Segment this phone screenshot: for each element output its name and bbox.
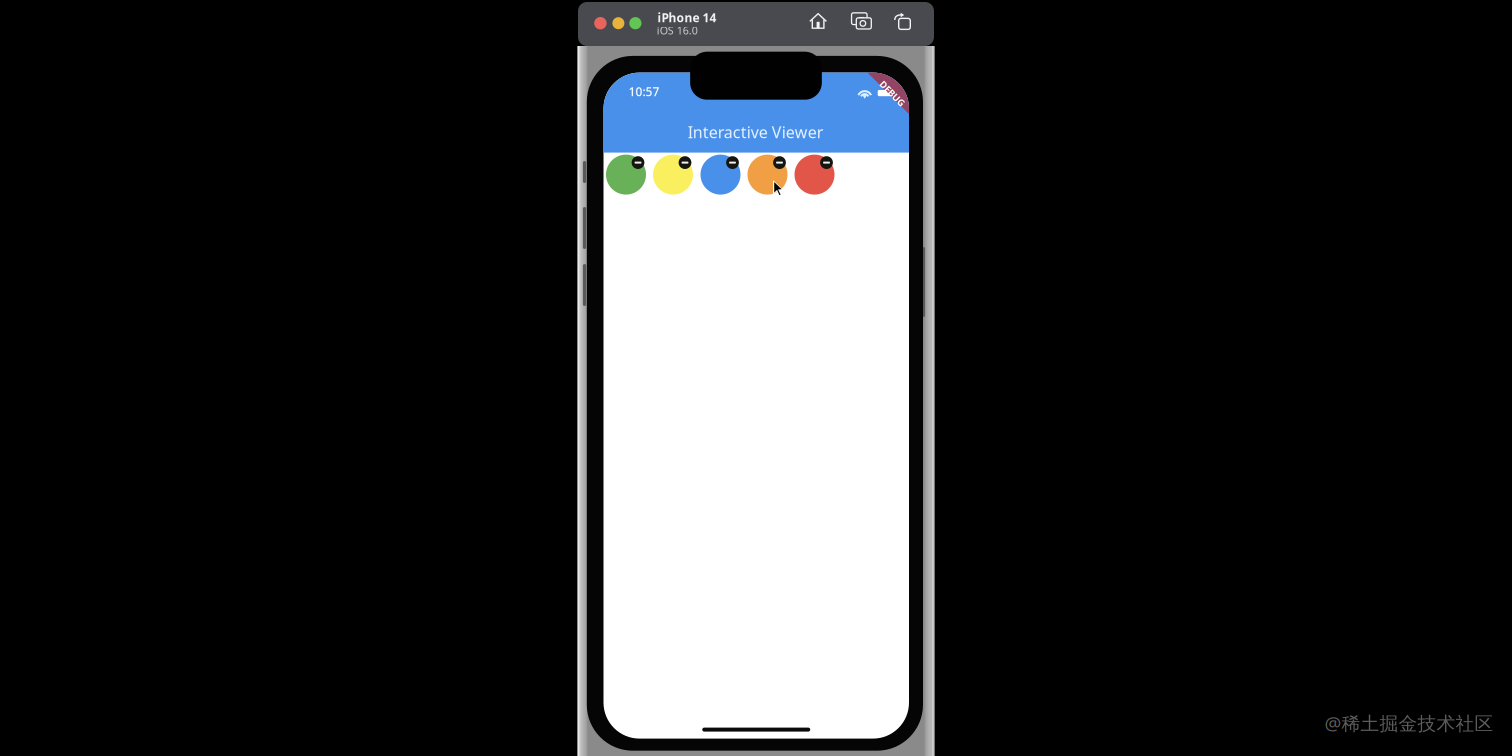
staticText: iPhone 14 <box>657 10 716 25</box>
staticText: Interactive Viewer <box>688 121 824 143</box>
button[interactable]: Remove colour <box>653 155 693 195</box>
button[interactable]: Remove colour <box>606 155 646 195</box>
button[interactable]: Close <box>594 17 607 29</box>
staticText: @稀土掘金技术社区 <box>1324 711 1493 735</box>
button[interactable]: Rotate device <box>894 12 910 29</box>
staticText: 10:57 <box>628 84 659 99</box>
staticText: iOS 16.0 <box>657 23 698 37</box>
button[interactable]: Minimise <box>612 17 624 29</box>
button[interactable]: Remove colour <box>747 155 787 195</box>
button[interactable]: Remove colour <box>794 155 834 195</box>
staticText: DEBUG <box>876 87 908 100</box>
button[interactable]: Remove colour <box>700 155 740 195</box>
button[interactable]: Zoom <box>629 17 641 29</box>
button[interactable]: Screenshot <box>852 13 872 30</box>
button[interactable]: Home <box>809 13 827 29</box>
